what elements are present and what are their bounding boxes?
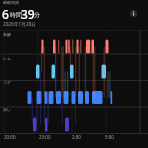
staticText: 睡眠時間: [3, 0, 19, 5]
staticText: 覚醒: [3, 32, 11, 37]
staticText: 20:00: [4, 134, 16, 140]
staticText: 23:00: [39, 134, 51, 140]
staticText: 5:00: [105, 134, 114, 140]
staticText: 2026年1月28日: [3, 21, 36, 27]
staticText: レム: [3, 56, 12, 61]
staticText: 2:00: [72, 134, 81, 140]
staticText: 分: [34, 11, 40, 19]
staticText: 39: [21, 6, 35, 22]
staticText: 深い: [3, 107, 12, 112]
button[interactable]: [130, 10, 137, 17]
staticText: コア: [3, 80, 12, 85]
staticText: 時間: [10, 11, 22, 19]
staticText: 6: [2, 6, 9, 22]
